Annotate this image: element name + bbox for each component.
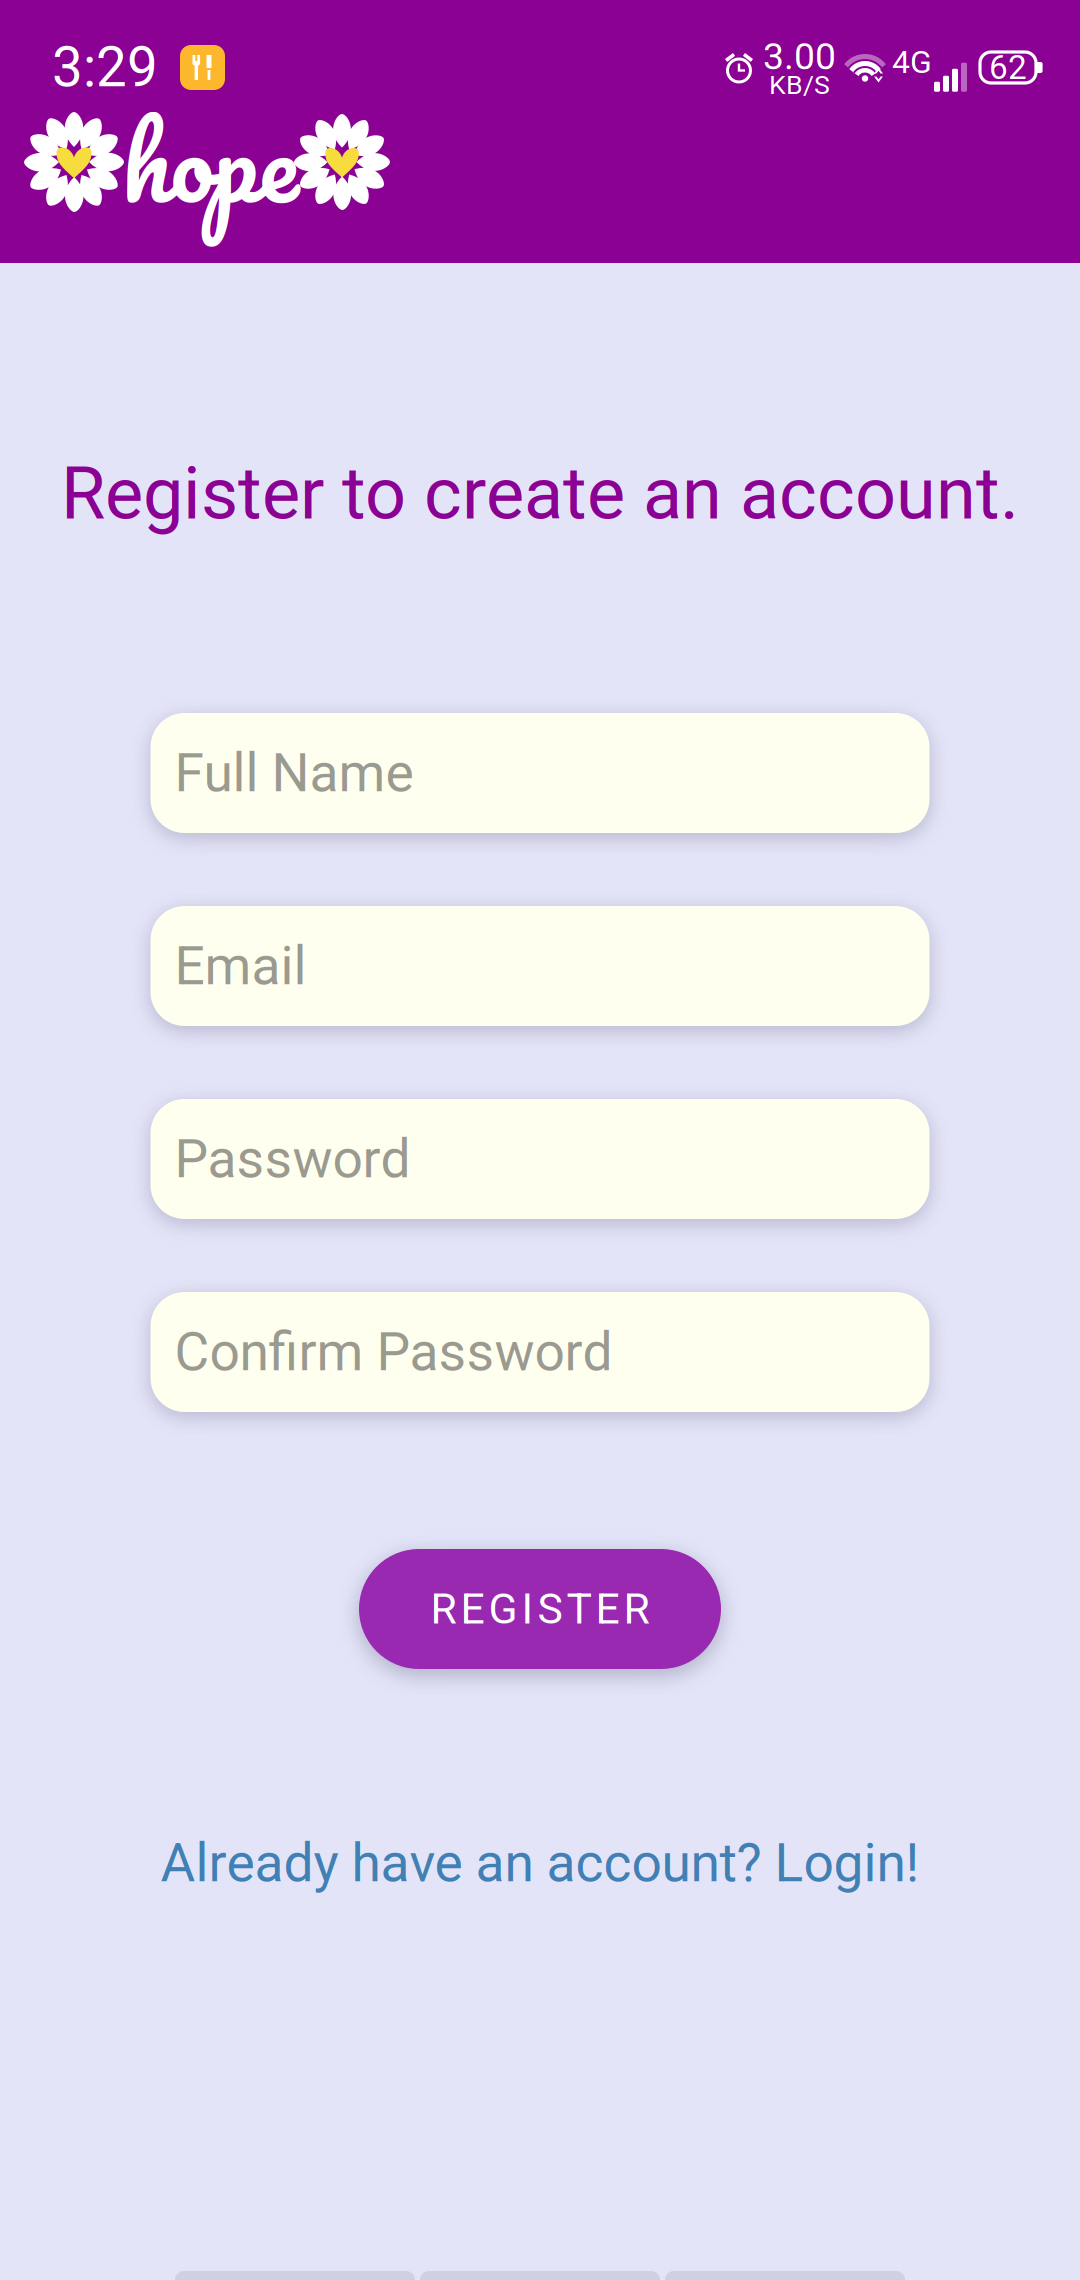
staticText: REGISTER (430, 1584, 649, 1634)
staticText: 62 (989, 48, 1027, 87)
staticText: 3:29 (52, 35, 158, 100)
staticText: Password (174, 1128, 410, 1190)
button[interactable]: Email (150, 906, 929, 1026)
staticText: KB/S (769, 69, 830, 100)
staticText: Register to create an account. (61, 452, 1019, 536)
button[interactable]: Already have an account? Login! (160, 1830, 919, 1896)
button[interactable]: Full Name (150, 713, 929, 833)
button[interactable]: Confirm Password (150, 1292, 929, 1412)
staticText: Full Name (174, 742, 413, 804)
button[interactable]: Password (150, 1099, 929, 1219)
staticText: hope (122, 78, 298, 246)
staticText: Already have an account? Login! (160, 1832, 919, 1894)
button[interactable]: REGISTER (359, 1549, 721, 1669)
staticText: 4G (892, 43, 932, 81)
staticText: Confirm Password (174, 1321, 612, 1383)
staticText: 3.00 (763, 34, 836, 78)
staticText: Email (174, 935, 306, 997)
